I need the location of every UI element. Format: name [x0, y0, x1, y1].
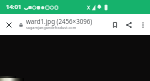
staticText: ward1.jpg (2456×3096) — [26, 17, 93, 25]
button[interactable]: Close — [0, 14, 17, 35]
button[interactable]: More options — [136, 14, 150, 35]
button[interactable]: Share — [121, 14, 136, 35]
button[interactable]: Bookmark — [108, 14, 121, 35]
staticText: 14:01 — [6, 3, 22, 11]
button[interactable]: ward1.jpg (2456×3096) — [17, 14, 108, 35]
staticText: sagamjangandefradust.com — [26, 25, 77, 30]
